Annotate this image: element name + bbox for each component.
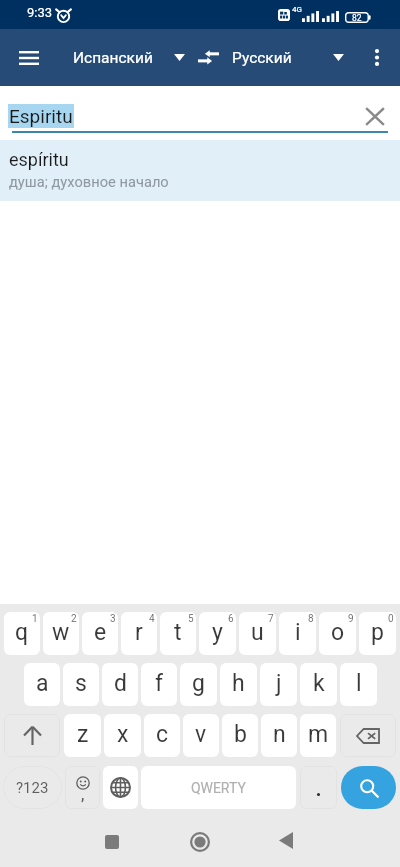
- staticText: 9:33: [27, 5, 53, 20]
- staticText: e: [94, 619, 107, 646]
- button[interactable]: Emoji: [65, 766, 100, 809]
- button[interactable]: v: [183, 714, 219, 757]
- staticText: y: [212, 619, 223, 646]
- staticText: Испанский: [73, 49, 153, 67]
- button[interactable]: w: [43, 612, 79, 655]
- staticText: k: [313, 670, 325, 697]
- staticText: 82: [352, 13, 362, 23]
- staticText: n: [273, 721, 286, 748]
- button[interactable]: Русский: [224, 29, 353, 86]
- button[interactable]: q: [4, 612, 40, 655]
- button[interactable]: Shift: [4, 714, 60, 757]
- staticText: 4: [149, 613, 155, 625]
- staticText: ?123: [16, 779, 49, 797]
- button[interactable]: Change keyboard language: [103, 766, 138, 809]
- button[interactable]: e: [82, 612, 118, 655]
- staticText: 2: [71, 613, 77, 625]
- button[interactable]: a: [24, 663, 60, 706]
- button[interactable]: More options: [354, 29, 400, 86]
- staticText: j: [276, 670, 282, 697]
- staticText: o: [331, 619, 345, 646]
- staticText: espíritu: [9, 149, 69, 170]
- staticText: 9: [348, 613, 354, 625]
- button[interactable]: y: [199, 612, 236, 655]
- button[interactable]: Navigation menu: [0, 29, 57, 86]
- staticText: 0: [388, 613, 394, 625]
- button[interactable]: Backspace: [340, 714, 396, 757]
- button[interactable]: c: [144, 714, 180, 757]
- staticText: h: [232, 670, 245, 697]
- button[interactable]: ?123: [3, 766, 62, 809]
- staticText: x: [117, 721, 129, 748]
- button[interactable]: p: [359, 612, 396, 655]
- staticText: Русский: [232, 49, 292, 67]
- staticText: 6: [228, 613, 234, 625]
- staticText: m: [308, 721, 329, 748]
- button[interactable]: g: [180, 663, 217, 706]
- staticText: w: [52, 619, 70, 646]
- staticText: b: [234, 721, 247, 748]
- staticText: f: [155, 670, 163, 697]
- staticText: QWERTY: [191, 780, 246, 796]
- staticText: 8: [308, 613, 314, 625]
- button[interactable]: f: [141, 663, 177, 706]
- staticText: ,: [81, 787, 85, 803]
- staticText: 5: [188, 613, 194, 625]
- staticText: 4G: [292, 5, 302, 14]
- button[interactable]: t: [160, 612, 196, 655]
- staticText: s: [75, 670, 87, 697]
- button[interactable]: x: [104, 714, 141, 757]
- button[interactable]: h: [220, 663, 257, 706]
- button[interactable]: QWERTY: [141, 766, 296, 809]
- staticText: t: [174, 619, 182, 646]
- button[interactable]: j: [260, 663, 297, 706]
- staticText: d: [114, 670, 127, 697]
- staticText: 1: [32, 613, 38, 625]
- button[interactable]: l: [340, 663, 377, 706]
- button[interactable]: Back: [250, 810, 322, 867]
- button[interactable]: [300, 766, 337, 809]
- staticText: a: [36, 670, 49, 697]
- button[interactable]: espíritu: [0, 140, 400, 201]
- staticText: l: [356, 670, 362, 697]
- button[interactable]: Search: [341, 766, 396, 809]
- button[interactable]: Испанский: [65, 29, 192, 86]
- button[interactable]: z: [64, 714, 101, 757]
- staticText: Espiritu: [9, 105, 73, 127]
- staticText: 7: [268, 613, 274, 625]
- staticText: g: [192, 670, 205, 697]
- staticText: r: [135, 619, 143, 646]
- button[interactable]: Home: [164, 810, 236, 867]
- button[interactable]: Clear text: [356, 95, 394, 137]
- button[interactable]: Swap languages: [192, 29, 224, 86]
- button[interactable]: i: [279, 612, 316, 655]
- staticText: душа; духовное начало: [9, 173, 169, 190]
- staticText: 3: [110, 613, 116, 625]
- button[interactable]: u: [239, 612, 276, 655]
- button[interactable]: k: [300, 663, 337, 706]
- button[interactable]: d: [102, 663, 138, 706]
- button[interactable]: m: [300, 714, 336, 757]
- button[interactable]: Recent apps: [76, 810, 148, 867]
- button[interactable]: o: [319, 612, 356, 655]
- staticText: q: [15, 619, 29, 646]
- staticText: c: [156, 721, 169, 748]
- button[interactable]: s: [63, 663, 99, 706]
- staticText: p: [371, 619, 384, 646]
- button[interactable]: b: [222, 714, 258, 757]
- staticText: v: [195, 721, 207, 748]
- staticText: u: [251, 619, 264, 646]
- button[interactable]: n: [261, 714, 297, 757]
- staticText: i: [295, 619, 301, 646]
- staticText: z: [77, 721, 89, 748]
- button[interactable]: r: [121, 612, 157, 655]
